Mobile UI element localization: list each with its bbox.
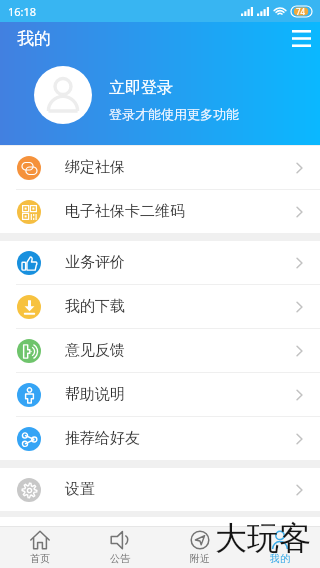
staticText: 登录才能使用更多功能 bbox=[109, 106, 239, 122]
button[interactable]: Menu bbox=[283, 22, 319, 54]
button[interactable]: 公告 bbox=[80, 527, 160, 568]
staticText: 推荐给好友 bbox=[65, 429, 140, 448]
staticText: 电子社保卡二维码 bbox=[65, 202, 185, 221]
staticText: 74 bbox=[296, 6, 306, 17]
button[interactable]: 帮助说明 bbox=[0, 373, 320, 416]
button[interactable]: 电子社保卡二维码 bbox=[0, 190, 320, 233]
button[interactable]: 设置 bbox=[0, 468, 320, 511]
staticText: 首页 bbox=[30, 552, 50, 565]
staticText: 绑定社保 bbox=[65, 158, 125, 177]
staticText: 公告 bbox=[110, 552, 130, 565]
staticText: 附近 bbox=[190, 552, 210, 565]
staticText: 帮助说明 bbox=[65, 385, 125, 404]
staticText: 业务评价 bbox=[65, 253, 125, 272]
staticText: 立即登录 bbox=[109, 78, 173, 98]
button[interactable]: 我的下载 bbox=[0, 285, 320, 328]
button[interactable]: 附近 bbox=[160, 527, 240, 568]
button[interactable]: 业务评价 bbox=[0, 241, 320, 284]
button[interactable]: 首页 bbox=[0, 527, 80, 568]
staticText: 我的下载 bbox=[65, 297, 125, 316]
staticText: 我的 bbox=[270, 552, 290, 565]
staticText: 大玩客 bbox=[215, 518, 311, 558]
staticText: 我的 bbox=[17, 28, 51, 49]
staticText: 意见反馈 bbox=[65, 341, 125, 360]
button[interactable]: 意见反馈 bbox=[0, 329, 320, 372]
button[interactable]: 我的 bbox=[240, 527, 320, 568]
button[interactable]: 推荐给好友 bbox=[0, 417, 320, 460]
button[interactable]: 绑定社保 bbox=[0, 146, 320, 189]
staticText: 设置 bbox=[65, 480, 95, 499]
staticText: 16:18 bbox=[8, 4, 37, 19]
